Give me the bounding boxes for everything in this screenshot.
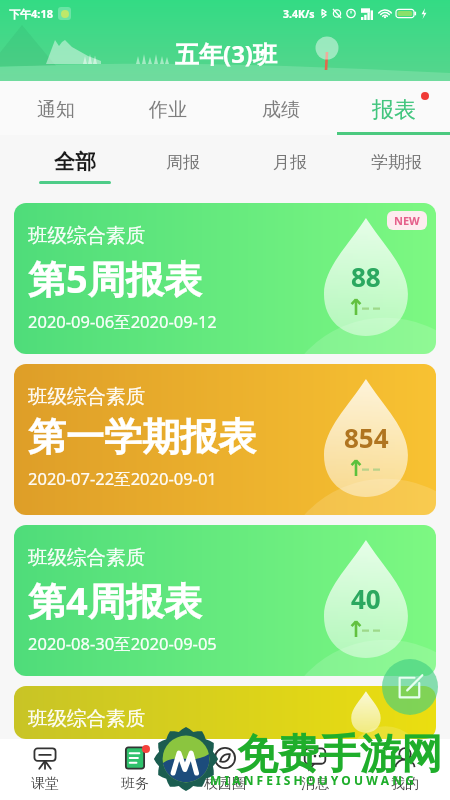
staticText: 校园圈 — [204, 775, 246, 793]
staticText: 854 — [344, 420, 389, 455]
staticText: 作业 — [149, 98, 187, 122]
staticText: 班级综合素质 — [28, 223, 145, 248]
button[interactable]: 成绩 — [224, 81, 337, 135]
staticText: 周报 — [166, 152, 200, 173]
button[interactable]: 通知 — [0, 81, 112, 135]
staticText: 第一学期报表 — [28, 413, 256, 461]
button[interactable]: 校园圈 — [180, 739, 270, 800]
staticText: 40 — [351, 581, 381, 616]
button[interactable]: 全部 — [21, 135, 129, 193]
button[interactable]: 班级综合素质 — [14, 686, 436, 739]
button[interactable]: Compose — [382, 659, 438, 715]
button[interactable]: 班务 — [90, 739, 180, 800]
staticText: NEW — [394, 213, 420, 228]
staticText: 成绩 — [262, 98, 300, 122]
staticText: 2020-09-06至2020-09-12 — [28, 310, 217, 333]
button[interactable]: 月报 — [236, 135, 343, 193]
button[interactable]: 报表 — [337, 81, 450, 135]
staticText: 消息 — [301, 775, 329, 793]
staticText: 免费手游网 — [237, 729, 442, 781]
staticText: 3.4K/s — [283, 7, 315, 21]
staticText: 月报 — [273, 152, 307, 173]
button[interactable]: 学期报 — [343, 135, 450, 193]
staticText: 第5周报表 — [28, 252, 202, 304]
staticText: 全部 — [54, 149, 96, 175]
staticText: 下午4:18 — [9, 6, 53, 21]
button[interactable]: 班级综合素质 — [14, 525, 436, 676]
staticText: M I A N F E I S H O U Y O U W A N G — [210, 772, 414, 788]
button[interactable]: 课堂 — [0, 739, 90, 800]
staticText: 学期报 — [371, 152, 422, 173]
button[interactable]: 班级综合素质 — [14, 364, 436, 515]
button[interactable]: 我的 — [360, 739, 450, 800]
staticText: 第4周报表 — [28, 574, 202, 626]
staticText: 2020-08-30至2020-09-05 — [28, 632, 217, 655]
staticText: 报表 — [372, 96, 416, 124]
button[interactable]: 班级综合素质 — [14, 203, 436, 354]
staticText: 班级综合素质 — [28, 545, 145, 570]
staticText: 88 — [351, 259, 381, 294]
staticText: 班级综合素质 — [28, 384, 145, 409]
staticText: 通知 — [37, 98, 75, 122]
button[interactable]: 周报 — [129, 135, 236, 193]
button[interactable]: 作业 — [112, 81, 224, 135]
staticText: 2020-07-22至2020-09-01 — [28, 467, 217, 490]
button[interactable]: 消息 — [270, 739, 360, 800]
staticText: 班级综合素质 — [28, 706, 145, 731]
staticText: 课堂 — [31, 775, 59, 793]
staticText: 班务 — [121, 775, 149, 793]
staticText: 五年(3)班 — [175, 37, 277, 70]
staticText: 第3周报表 — [28, 735, 202, 739]
staticText: 我的 — [391, 775, 419, 793]
